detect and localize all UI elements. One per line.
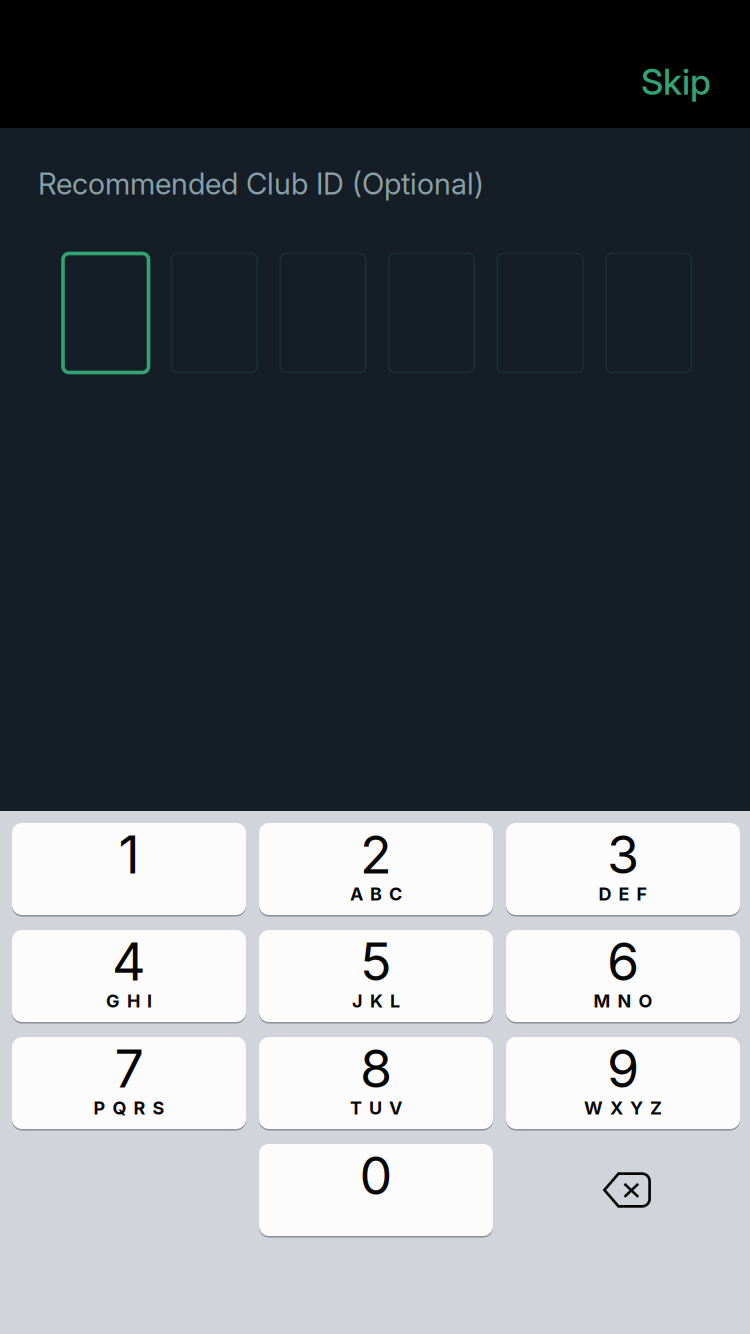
button[interactable]: 1 [12,823,246,915]
staticText: 3 [607,823,639,886]
staticText: 8 [360,1037,392,1100]
staticText: P Q R S [93,1097,164,1119]
button[interactable]: 7 [12,1037,246,1129]
button[interactable]: 2 [259,823,493,915]
button[interactable]: Skip [591,56,711,108]
button[interactable]: 3 [506,823,740,915]
staticText: 6 [607,930,639,993]
button[interactable]: 6 [506,930,740,1022]
staticText: 4 [112,930,146,993]
staticText: Recommended Club ID (Optional) [38,166,484,201]
staticText: M N O [593,990,652,1012]
staticText: A B C [350,883,402,905]
staticText: 5 [360,930,392,993]
staticText: 7 [114,1037,143,1100]
staticText: Skip [641,61,711,103]
button[interactable]: 5 [259,930,493,1022]
staticText: G H I [106,990,152,1012]
button[interactable]: 0 [259,1144,493,1236]
staticText: J K L [352,990,400,1012]
staticText: W X Y Z [584,1097,662,1119]
staticText: 2 [360,823,392,886]
button[interactable]: 9 [506,1037,740,1129]
button[interactable]: Code digit 1 [63,253,148,372]
staticText: 0 [359,1144,392,1207]
staticText: 9 [607,1037,639,1100]
button[interactable]: 4 [12,930,246,1022]
button[interactable]: 8 [259,1037,493,1129]
button[interactable]: Delete [506,1144,740,1236]
staticText: 1 [118,823,139,886]
staticText: T U V [350,1097,402,1119]
staticText: D E F [598,883,647,905]
